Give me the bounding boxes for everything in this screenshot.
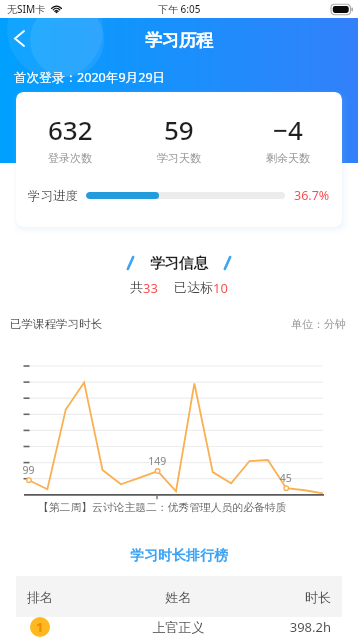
staticText: 共 [130, 279, 143, 295]
staticText: −4 [273, 112, 303, 147]
staticText: 学习历程 [145, 30, 213, 51]
staticText: 1 [36, 618, 44, 636]
staticText: 学习进度 [28, 188, 78, 204]
staticText: 学习信息 [150, 254, 208, 272]
staticText: 已达标 [174, 279, 213, 295]
staticText: 【第二周】云讨论主题二：优秀管理人员的必备特质 [38, 501, 287, 515]
staticText: 学习天数 [157, 151, 201, 165]
staticText: 单位：分钟 [291, 317, 346, 331]
staticText: 33 [143, 279, 158, 297]
staticText: 剩余天数 [266, 151, 310, 165]
staticText: 59 [164, 112, 194, 147]
button[interactable]: 1 [16, 617, 342, 637]
staticText: 上官正义 [124, 619, 233, 635]
staticText: 632 [48, 112, 93, 147]
staticText: 登录次数 [48, 151, 92, 165]
staticText: 时长 [233, 589, 331, 605]
staticText: 36.7% [294, 187, 330, 204]
staticText: 已学课程学习时长 [10, 317, 102, 331]
staticText: 首次登录：2020年9月29日 [14, 69, 166, 86]
staticText: 下午 6:05 [158, 2, 201, 16]
staticText: 排名 [27, 589, 124, 605]
staticText: 姓名 [124, 589, 233, 605]
button[interactable]: Back [0, 21, 38, 59]
staticText: 无SIM卡 [7, 2, 46, 16]
staticText: 学习时长排行榜 [130, 547, 228, 565]
staticText: 10 [213, 279, 228, 297]
staticText: 398.2h [233, 618, 331, 636]
